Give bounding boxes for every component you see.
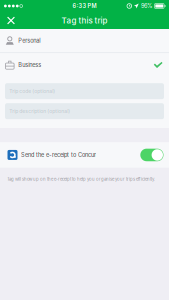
staticText: Tag this trip bbox=[61, 16, 107, 25]
staticText: 6:33 PM bbox=[72, 3, 96, 9]
button[interactable]: Personal bbox=[0, 29, 169, 52]
staticText: Trip code (optional) bbox=[9, 88, 55, 94]
button[interactable]: Send the e-receipt to Concur bbox=[0, 142, 169, 168]
button[interactable]: Close bbox=[0, 12, 22, 29]
staticText: Personal bbox=[18, 37, 40, 44]
staticText: Trip description (optional) bbox=[9, 108, 70, 114]
staticText: Business bbox=[18, 62, 41, 68]
staticText: Tag will show up on the e-receipt to hel… bbox=[7, 177, 155, 182]
button[interactable]: Business bbox=[0, 53, 169, 77]
staticText: 96% bbox=[141, 3, 152, 9]
staticText: Send the e-receipt to Concur bbox=[21, 152, 96, 158]
